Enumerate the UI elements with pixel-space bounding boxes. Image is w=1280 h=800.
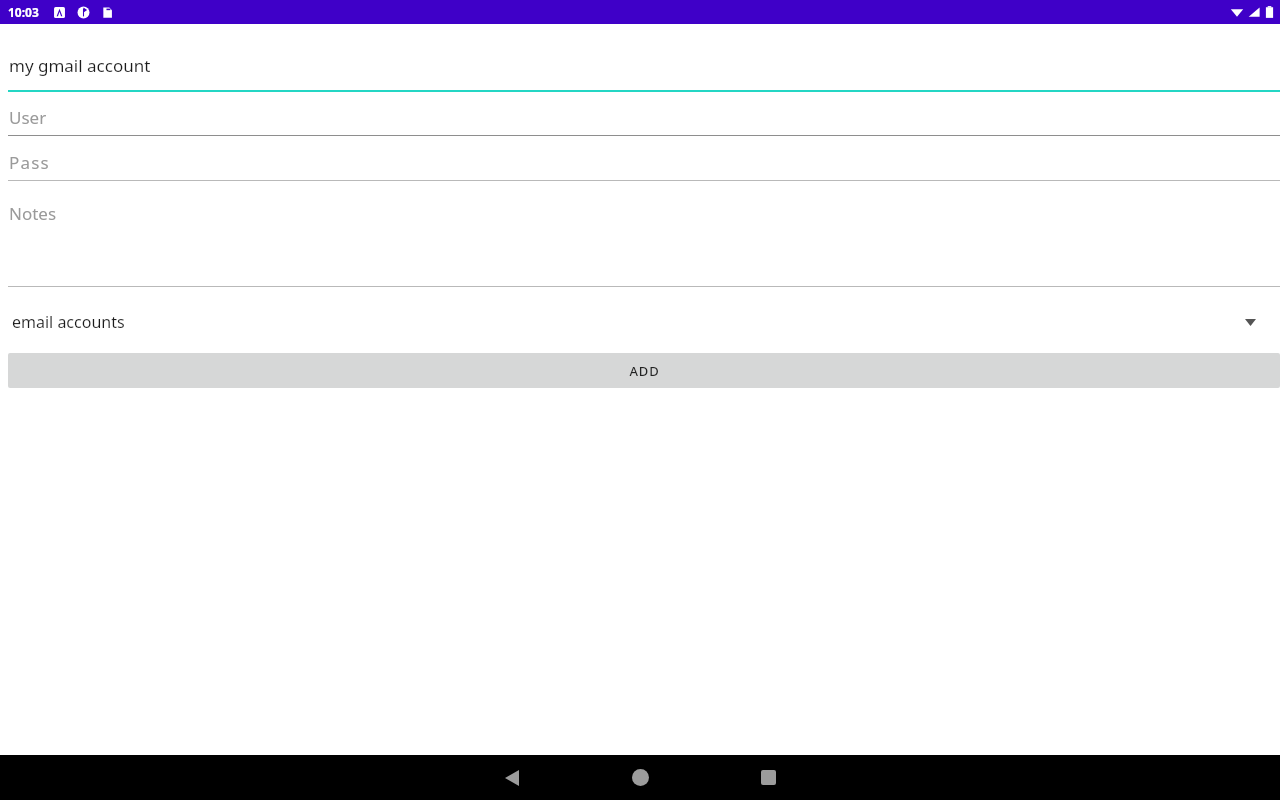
staticText: Notes bbox=[9, 202, 57, 225]
staticText: my gmail account bbox=[9, 54, 151, 77]
staticText: 10:03 bbox=[8, 4, 39, 20]
button[interactable]: Pass bbox=[0, 144, 1280, 181]
staticText: User bbox=[9, 106, 47, 129]
button[interactable]: email accounts bbox=[0, 299, 1280, 345]
staticText: ADD bbox=[629, 362, 660, 380]
button[interactable]: Back bbox=[480, 755, 544, 800]
button[interactable]: Recent apps bbox=[736, 755, 800, 800]
button[interactable]: User bbox=[0, 99, 1280, 136]
staticText: email accounts bbox=[12, 311, 125, 333]
button[interactable]: Home bbox=[608, 755, 672, 800]
staticText: Pass bbox=[9, 151, 50, 174]
button[interactable]: ADD bbox=[8, 353, 1280, 388]
button[interactable]: Notes bbox=[0, 190, 1280, 286]
button[interactable]: my gmail account bbox=[0, 43, 1280, 88]
